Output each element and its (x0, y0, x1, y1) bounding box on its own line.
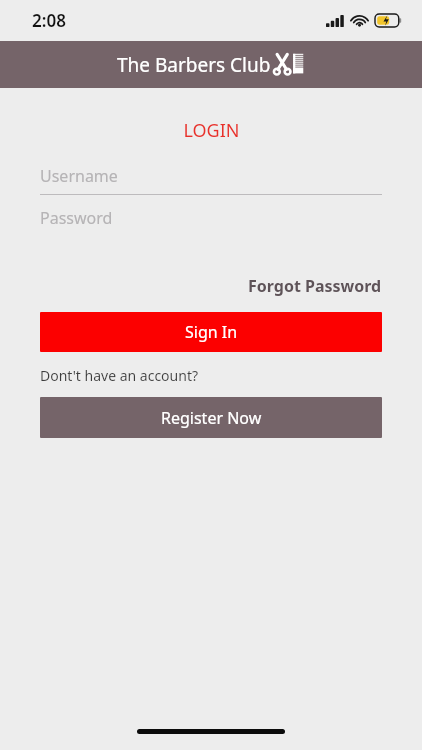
staticText: LOGIN (183, 118, 240, 143)
button[interactable]: Username (40, 165, 382, 195)
other: Home indicator (137, 729, 285, 734)
staticText: Forgot Password (248, 275, 382, 297)
staticText: Sign In (185, 321, 238, 343)
staticText: Password (40, 207, 113, 229)
staticText: The Barbers Club (117, 52, 271, 78)
staticText: Dont't have an account? (40, 366, 199, 385)
button[interactable]: Sign In (40, 312, 382, 352)
button[interactable]: Register Now (40, 397, 382, 438)
staticText: Register Now (161, 407, 262, 429)
button[interactable]: Password (40, 207, 382, 237)
staticText: 2:08 (32, 9, 66, 32)
staticText: Username (40, 165, 118, 187)
button[interactable]: Forgot Password (248, 275, 382, 297)
